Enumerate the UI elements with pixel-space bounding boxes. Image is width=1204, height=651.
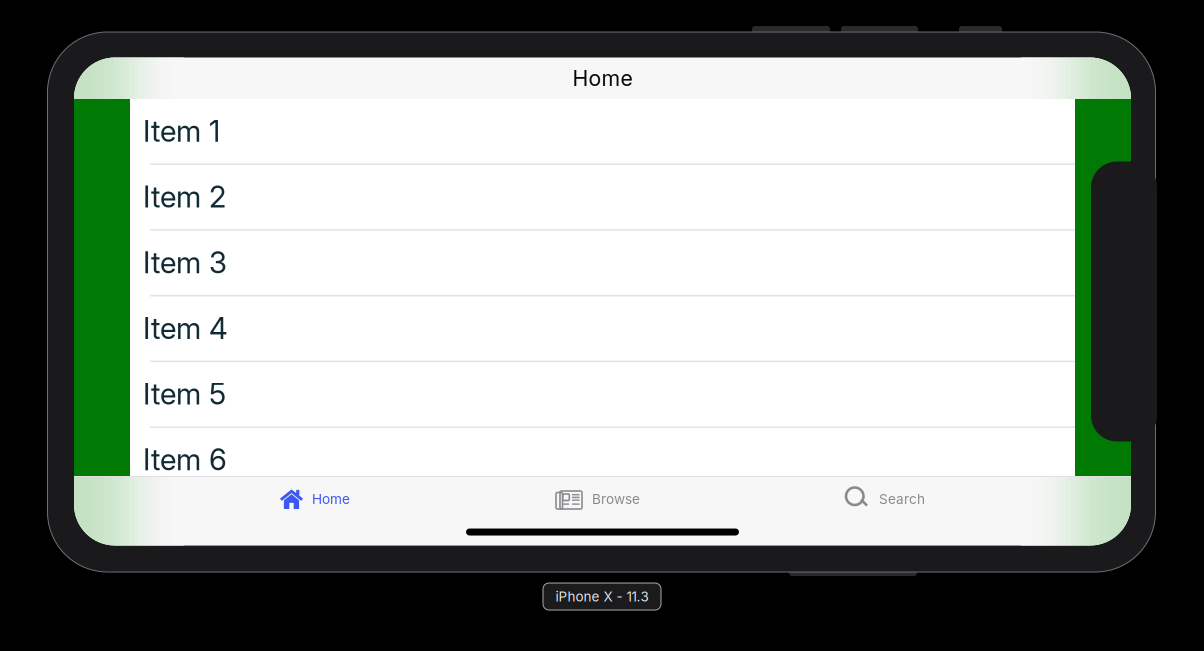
staticText: Item 5 — [143, 376, 226, 412]
button[interactable]: Browse — [550, 483, 646, 515]
staticText: Search — [879, 491, 925, 507]
button[interactable]: Search — [840, 482, 931, 515]
staticText: Home — [312, 491, 350, 507]
staticText: Item 2 — [143, 179, 226, 214]
staticText: Item 6 — [143, 442, 227, 477]
button[interactable]: Item 7 — [130, 493, 1075, 559]
staticText: Item 7 — [143, 508, 225, 543]
staticText: Browse — [592, 491, 640, 507]
button[interactable]: Item 3 — [130, 230, 1075, 296]
button[interactable]: Home — [274, 484, 356, 514]
button[interactable]: Item 1 — [130, 99, 1075, 165]
button[interactable]: Item 4 — [130, 296, 1075, 362]
staticText: iPhone X - 11.3 — [555, 588, 648, 605]
staticText: Home — [572, 65, 632, 91]
staticText: Item 1 — [143, 113, 220, 149]
staticText: Item 3 — [143, 245, 227, 280]
button[interactable]: Item 5 — [130, 362, 1075, 428]
staticText: Item 4 — [143, 310, 228, 346]
button[interactable]: Item 2 — [130, 165, 1075, 230]
button[interactable]: Item 6 — [130, 428, 1075, 493]
